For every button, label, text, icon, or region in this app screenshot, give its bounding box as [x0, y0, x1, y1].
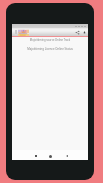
button[interactable]: Back	[64, 151, 70, 161]
button[interactable]: App logo	[18, 29, 29, 36]
button[interactable]: Home	[47, 151, 53, 161]
button[interactable]: Recents	[33, 151, 39, 161]
button[interactable]: Notifications	[83, 31, 86, 34]
button[interactable]: Share	[75, 30, 80, 35]
staticText: Mojoittiming source Online Track	[12, 38, 88, 42]
staticText: Majoittiming Licence Online Status	[12, 47, 88, 51]
